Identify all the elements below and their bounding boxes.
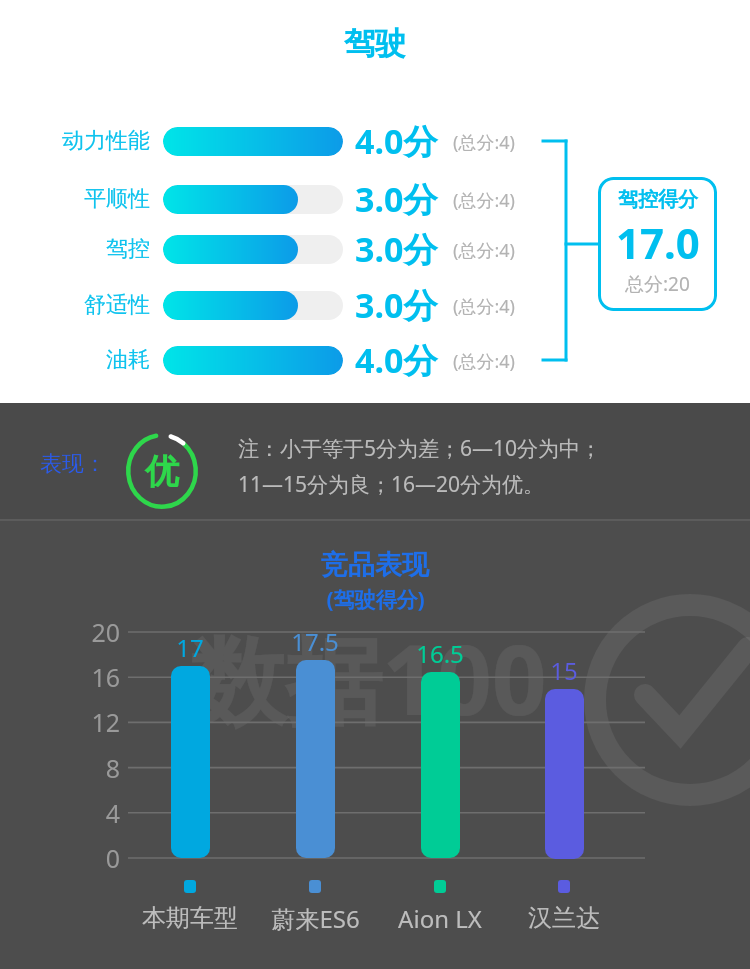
button[interactable]: [545, 689, 584, 859]
button[interactable]: 驾控: [10, 233, 150, 265]
button[interactable]: 表现：: [40, 449, 106, 479]
staticText: 蔚来ES6: [271, 902, 360, 935]
button[interactable]: 评价：优: [126, 433, 198, 509]
button[interactable]: 平顺性: [10, 183, 150, 215]
staticText: Aion LX: [398, 902, 482, 935]
staticText: 动力性能: [62, 127, 150, 155]
staticText: 4: [105, 796, 120, 830]
staticText: 16.5: [416, 637, 464, 670]
staticText: 数据100: [190, 612, 547, 743]
staticText: (总分:4): [453, 349, 515, 374]
staticText: 优: [145, 450, 179, 493]
staticText: 11—15分为良；16—20分为优。: [238, 470, 545, 499]
staticText: 3.0分: [355, 282, 438, 328]
button[interactable]: 舒适性: [10, 289, 150, 321]
staticText: (总分:4): [453, 294, 515, 319]
staticText: 8: [105, 751, 120, 785]
staticText: 驾驶: [344, 24, 406, 63]
staticText: (总分:4): [453, 130, 515, 155]
button[interactable]: Aion LX: [370, 900, 510, 936]
staticText: (总分:4): [453, 238, 515, 263]
staticText: 竞品表现: [321, 548, 429, 582]
staticText: 驾控得分: [618, 187, 698, 212]
button[interactable]: 驾控得分: [598, 177, 717, 311]
button[interactable]: [421, 672, 460, 858]
button[interactable]: [163, 291, 343, 320]
button[interactable]: [163, 127, 343, 156]
staticText: (驾驶得分): [326, 585, 425, 614]
staticText: 油耗: [106, 346, 150, 374]
staticText: 16: [91, 660, 120, 694]
button[interactable]: [163, 185, 343, 214]
staticText: 本期车型: [142, 903, 238, 933]
staticText: 17.5: [291, 625, 339, 658]
button[interactable]: [171, 666, 210, 858]
button[interactable]: 汉兰达: [494, 900, 634, 936]
staticText: 汉兰达: [528, 903, 600, 933]
staticText: 17: [176, 631, 204, 664]
staticText: 总分:20: [625, 271, 690, 297]
button[interactable]: 油耗: [10, 344, 150, 376]
staticText: 4.0分: [355, 118, 438, 164]
staticText: 3.0分: [355, 226, 438, 272]
staticText: 4.0分: [355, 337, 438, 383]
button[interactable]: [163, 346, 343, 375]
button[interactable]: [163, 235, 343, 264]
button[interactable]: 蔚来ES6: [245, 900, 385, 936]
staticText: 15: [550, 654, 578, 687]
staticText: 注：小于等于5分为差；6—10分为中；: [238, 434, 602, 463]
staticText: 0: [105, 841, 120, 875]
staticText: (总分:4): [453, 188, 515, 213]
button[interactable]: [296, 660, 335, 858]
staticText: 3.0分: [355, 176, 438, 222]
staticText: 驾控: [106, 235, 150, 263]
button[interactable]: 本期车型: [120, 900, 260, 936]
staticText: 表现：: [40, 450, 106, 478]
staticText: 舒适性: [84, 291, 150, 319]
staticText: 17.0: [616, 214, 700, 271]
button[interactable]: 动力性能: [10, 125, 150, 157]
staticText: 20: [91, 615, 120, 649]
staticText: 平顺性: [84, 185, 150, 213]
staticText: 12: [91, 705, 120, 739]
